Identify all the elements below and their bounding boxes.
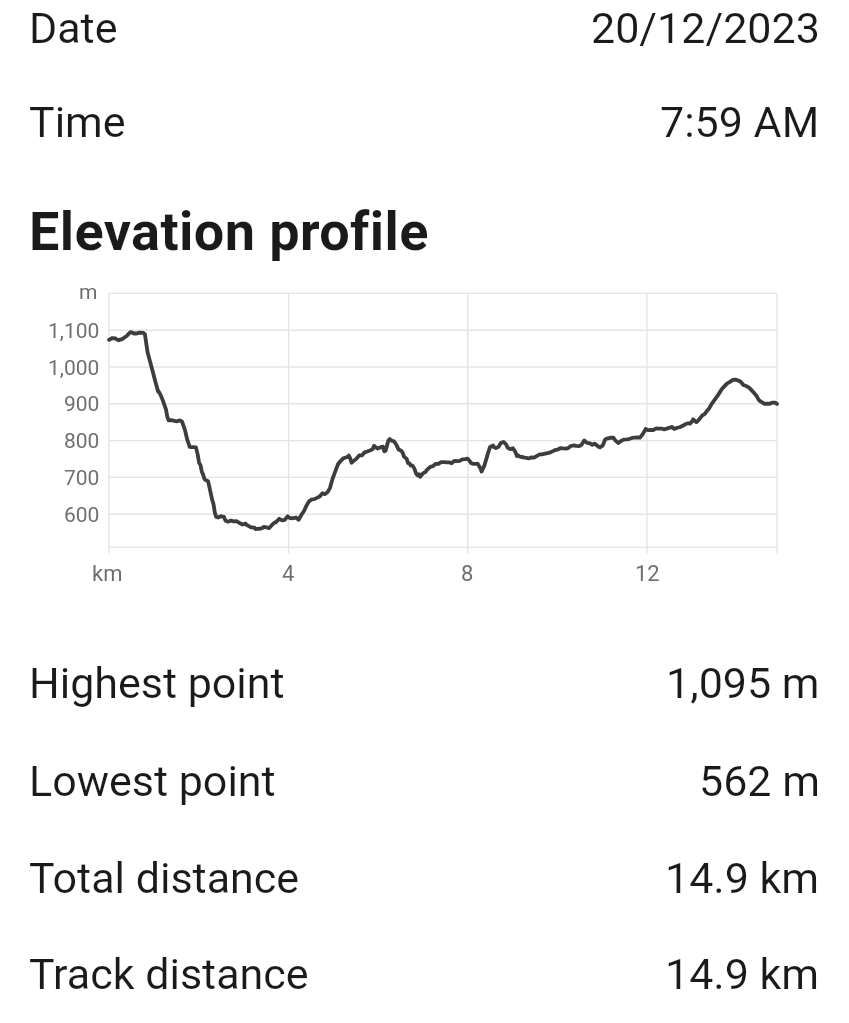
staticText: 20/12/2023 bbox=[591, 3, 820, 53]
staticText: m bbox=[79, 280, 98, 305]
staticText: 4 bbox=[282, 561, 295, 587]
staticText: 700 bbox=[64, 466, 100, 491]
staticText: km bbox=[92, 561, 123, 587]
staticText: Lowest point bbox=[29, 756, 276, 806]
staticText: Highest point bbox=[29, 658, 285, 708]
staticText: Track distance bbox=[29, 949, 309, 999]
staticText: 12 bbox=[635, 561, 660, 587]
staticText: Elevation profile bbox=[29, 200, 429, 263]
staticText: 900 bbox=[64, 392, 100, 417]
staticText: Date bbox=[29, 3, 118, 53]
staticText: 1,000 bbox=[48, 356, 100, 381]
staticText: 600 bbox=[64, 503, 100, 528]
staticText: 8 bbox=[461, 561, 474, 587]
staticText: Total distance bbox=[29, 853, 300, 903]
staticText: 562 m bbox=[699, 756, 820, 806]
staticText: 1,100 bbox=[48, 319, 100, 344]
staticText: 800 bbox=[64, 429, 100, 454]
staticText: 1,095 m bbox=[666, 658, 820, 708]
staticText: 7:59 AM bbox=[660, 97, 820, 147]
staticText: Time bbox=[29, 97, 126, 147]
staticText: 14.9 km bbox=[665, 949, 820, 999]
staticText: 14.9 km bbox=[665, 853, 820, 903]
